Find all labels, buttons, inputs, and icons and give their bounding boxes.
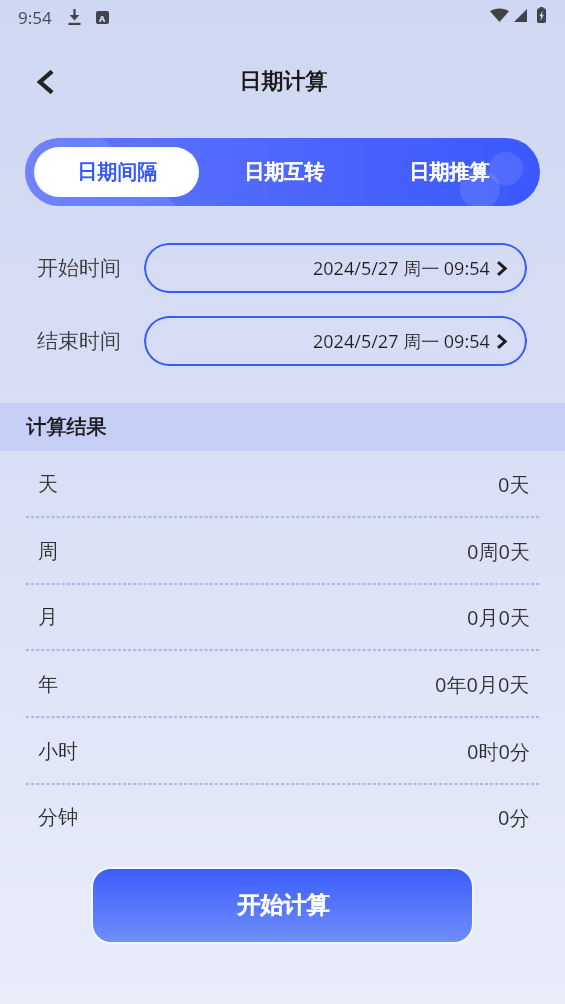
staticText: 2024/5/27 周一 09:54 [313,329,490,354]
staticText: 0时0分 [467,738,530,765]
staticText: A [99,12,106,24]
button[interactable]: 年 [38,651,530,718]
staticText: 日期互转 [244,160,324,185]
button[interactable]: 分钟 [38,784,530,851]
staticText: 0年0月0天 [435,671,530,698]
staticText: 日期间隔 [77,160,157,185]
button[interactable]: Back [24,60,68,104]
button[interactable]: 天 [38,451,530,518]
staticText: 分钟 [38,805,78,830]
staticText: 年 [38,672,58,697]
staticText: 结束时间 [37,328,121,354]
staticText: 小时 [38,739,78,764]
button[interactable]: 2024/5/27 周一 09:54 [144,243,527,293]
staticText: 开始时间 [37,255,121,281]
staticText: 2024/5/27 周一 09:54 [313,256,490,281]
staticText: 0月0天 [467,604,530,631]
staticText: 日期计算 [239,68,327,96]
staticText: 天 [38,472,58,497]
staticText: 日期推算 [409,160,489,185]
button[interactable]: 月 [38,584,530,651]
button[interactable]: 日期间隔 [34,147,199,197]
button[interactable]: 开始计算 [93,869,472,942]
staticText: 月 [38,605,58,630]
staticText: 计算结果 [26,415,106,440]
button[interactable]: 日期互转 [201,138,367,206]
button[interactable]: 日期推算 [366,138,532,206]
staticText: 开始计算 [237,891,329,920]
staticText: 0周0天 [467,538,530,565]
button[interactable]: 周 [38,518,530,585]
button[interactable]: 小时 [38,718,530,785]
staticText: 0天 [498,471,530,498]
staticText: 周 [38,539,58,564]
staticText: 0分 [498,804,530,831]
button[interactable]: 2024/5/27 周一 09:54 [144,316,527,366]
staticText: 9:54 [18,6,52,29]
